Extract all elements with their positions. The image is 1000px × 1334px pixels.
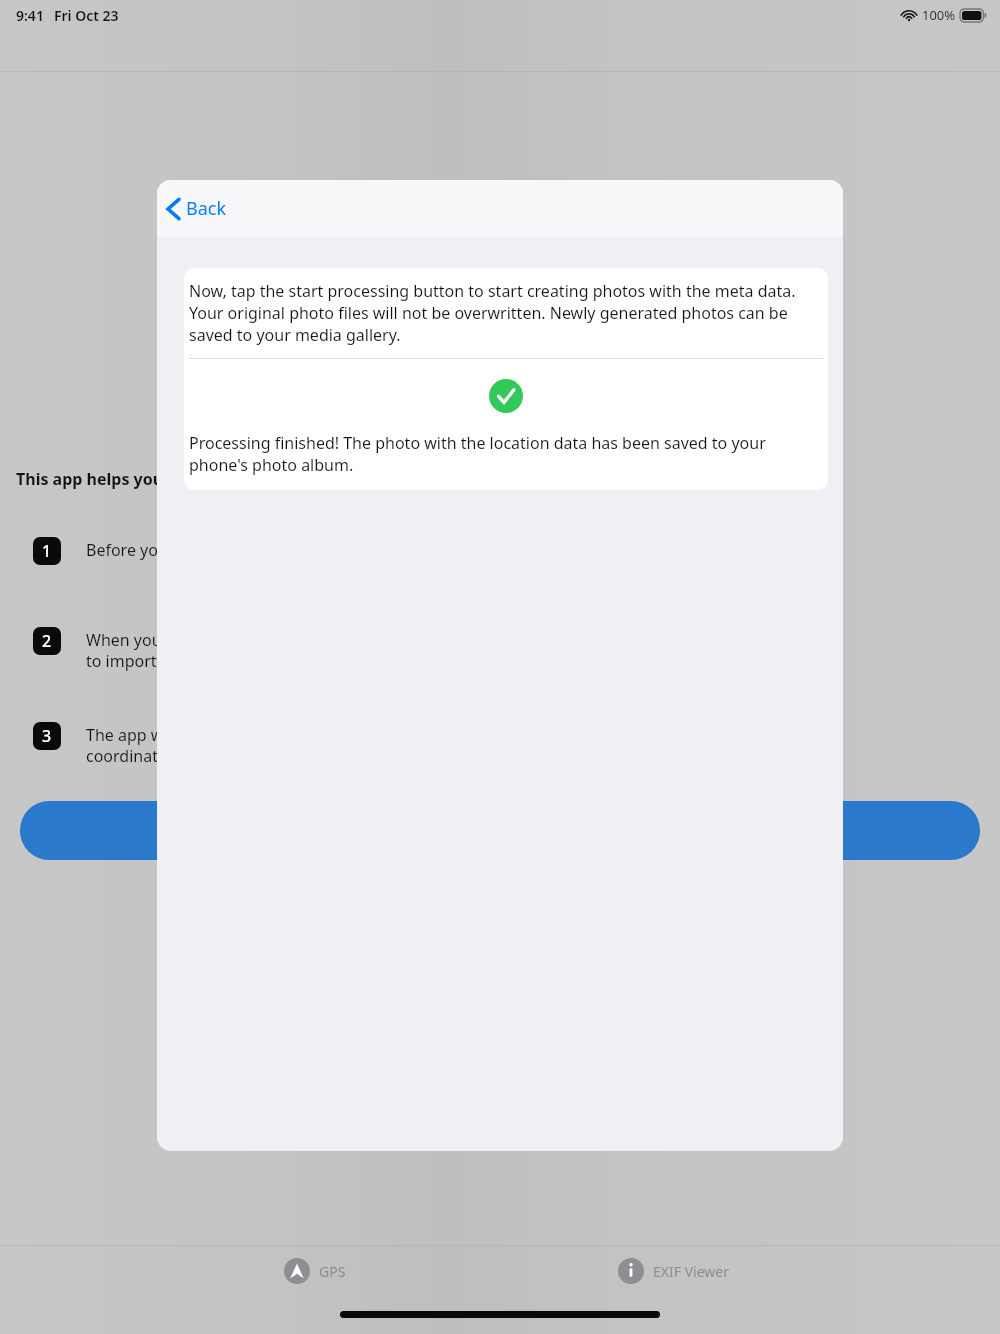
- button[interactable]: Select photos and add GPS data: [20, 801, 980, 860]
- staticText: 9:41: [16, 6, 44, 25]
- staticText: Now, tap the start processing button to …: [189, 280, 823, 346]
- staticText: Processing finished! The photo with the …: [189, 432, 823, 476]
- staticText: The app will then read the current locat…: [86, 724, 738, 767]
- staticText: 3: [42, 725, 52, 747]
- staticText: Back: [186, 196, 227, 221]
- staticText: Fri Oct 23: [54, 6, 119, 25]
- other: EXIF Viewer: [618, 1258, 644, 1284]
- button[interactable]: Back: [167, 196, 227, 221]
- staticText: Before you start, please make sure the l…: [86, 539, 602, 561]
- staticText: 2: [42, 630, 52, 652]
- staticText: EXIF Viewer: [653, 1262, 729, 1281]
- button[interactable]: EXIF Viewer: [618, 1258, 729, 1284]
- button[interactable]: GPS: [284, 1258, 346, 1284]
- staticText: 100%: [922, 6, 956, 24]
- other: GPS: [284, 1258, 310, 1284]
- staticText: GPS: [319, 1262, 346, 1281]
- staticText: When you press the button below, a photo…: [86, 629, 729, 672]
- staticText: 1: [42, 540, 52, 562]
- staticText: This app helps you to add GPS location d…: [16, 468, 489, 490]
